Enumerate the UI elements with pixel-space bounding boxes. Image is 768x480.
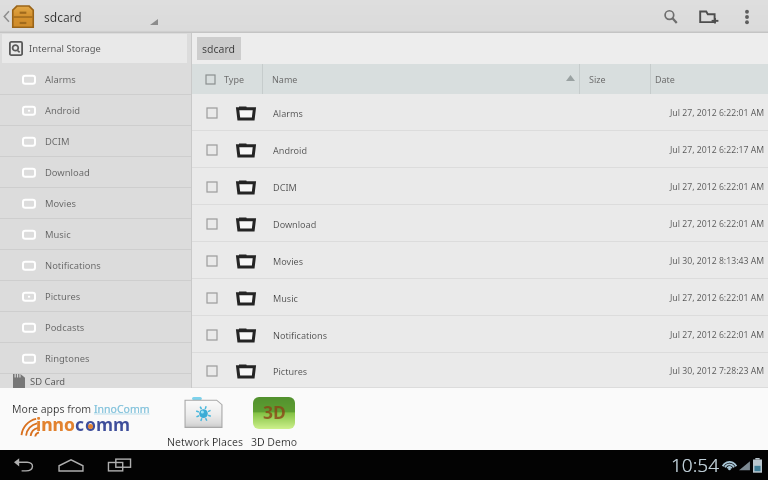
staticText: Network Places — [162, 435, 248, 449]
button[interactable]: Android — [0, 95, 192, 126]
staticText: Jul 27, 2012 6:22:01 AM — [670, 292, 765, 304]
staticText: Movies — [45, 197, 76, 210]
staticText: Notifications — [273, 329, 328, 341]
button[interactable]: SD Card — [0, 374, 192, 388]
button[interactable]: More options — [726, 0, 768, 33]
staticText: Music — [45, 228, 71, 241]
button[interactable]: Music — [0, 219, 192, 250]
staticText: Download — [45, 166, 90, 179]
staticText: 3D — [263, 400, 286, 424]
staticText: o — [85, 412, 96, 436]
staticText: DCIM — [45, 135, 70, 148]
button[interactable] — [244, 394, 306, 448]
staticText: Size — [589, 73, 606, 85]
staticText: DCIM — [273, 181, 297, 193]
staticText: 10:54 — [671, 452, 720, 478]
button[interactable]: Android — [192, 131, 768, 168]
staticText: Name — [272, 73, 298, 85]
staticText: Music — [273, 292, 298, 304]
staticText: Jul 30, 2012 7:28:23 AM — [670, 365, 765, 377]
button[interactable]: Music — [192, 279, 768, 316]
button[interactable]: Recent apps — [96, 450, 142, 480]
staticText: sdcard — [44, 9, 82, 25]
staticText: Alarms — [45, 73, 76, 86]
button[interactable] — [2, 390, 162, 448]
staticText: 3D Demo — [242, 435, 306, 449]
staticText: SD Card — [30, 375, 66, 388]
button[interactable]: Back — [2, 450, 46, 480]
button[interactable]: Up — [0, 0, 13, 33]
button[interactable]: Podcasts — [0, 312, 192, 343]
button[interactable]: Internal Storage — [2, 34, 187, 63]
button[interactable]: Download — [192, 205, 768, 242]
button[interactable]: Pictures — [0, 281, 192, 312]
button[interactable]: Home — [47, 450, 95, 480]
button[interactable] — [170, 394, 240, 448]
staticText: Internal Storage — [29, 42, 101, 55]
staticText: Pictures — [273, 365, 308, 377]
staticText: c — [75, 412, 85, 436]
staticText: Jul 27, 2012 6:22:17 AM — [670, 144, 765, 156]
button[interactable]: Movies — [192, 242, 768, 279]
button[interactable]: Alarms — [192, 94, 768, 131]
button[interactable]: DCIM — [0, 126, 192, 157]
button[interactable]: Movies — [0, 188, 192, 219]
staticText: Alarms — [273, 107, 303, 119]
staticText: Android — [273, 144, 308, 156]
button[interactable]: Download — [0, 157, 192, 188]
staticText: Movies — [273, 255, 304, 267]
staticText: Jul 27, 2012 6:22:01 AM — [670, 107, 765, 119]
staticText: Ringtones — [45, 352, 90, 365]
staticText: mm — [96, 412, 131, 436]
staticText: Android — [45, 104, 81, 117]
button[interactable]: sdcard — [197, 37, 241, 60]
staticText: Jul 27, 2012 6:22:01 AM — [670, 181, 765, 193]
button[interactable]: Ringtones — [0, 343, 192, 374]
button[interactable]: Pictures — [192, 353, 768, 388]
button[interactable]: New folder — [686, 0, 732, 33]
button[interactable]: DCIM — [192, 168, 768, 205]
staticText: Podcasts — [45, 321, 85, 334]
button[interactable]: Notifications — [0, 250, 192, 281]
staticText: Notifications — [45, 259, 101, 272]
staticText: Pictures — [45, 290, 81, 303]
staticText: More apps from — [12, 402, 94, 416]
staticText: Download — [273, 218, 317, 230]
staticText: Jul 30, 2012 8:13:43 AM — [670, 255, 765, 267]
button[interactable]: Alarms — [0, 64, 192, 95]
button[interactable]: Notifications — [192, 316, 768, 353]
staticText: Jul 27, 2012 6:22:01 AM — [670, 218, 765, 230]
staticText: Type — [224, 73, 245, 85]
staticText: sdcard — [202, 42, 236, 56]
staticText: inno — [36, 412, 75, 436]
staticText: Jul 27, 2012 6:22:01 AM — [670, 329, 765, 341]
staticText: InnoComm — [94, 402, 150, 416]
staticText: Date — [655, 73, 675, 85]
button[interactable]: Search — [648, 0, 694, 33]
